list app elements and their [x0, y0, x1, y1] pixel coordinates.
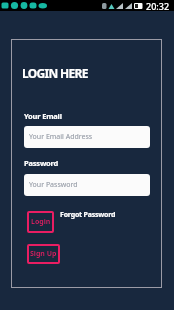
staticText: Your Email Address: [29, 132, 93, 142]
button[interactable]: Forgot Password: [60, 210, 116, 220]
staticText: Sign Up: [30, 249, 57, 259]
button[interactable]: Sign Up: [27, 244, 60, 264]
staticText: Password: [24, 158, 59, 168]
staticText: LOGIN HERE: [22, 65, 88, 81]
button[interactable]: Login: [27, 211, 54, 233]
button[interactable]: Your Email Address: [24, 126, 150, 148]
staticText: 20:32: [146, 0, 170, 11]
staticText: Login: [31, 217, 51, 227]
staticText: Your Email: [24, 111, 62, 121]
button[interactable]: Your Password: [24, 174, 150, 196]
staticText: Your Password: [29, 180, 78, 190]
